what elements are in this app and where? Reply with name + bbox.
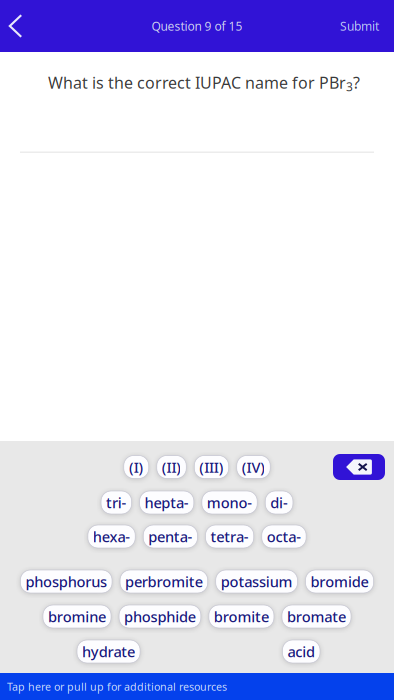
staticText: hexa- bbox=[93, 527, 130, 546]
staticText: (III) bbox=[199, 457, 224, 477]
button[interactable]: tri- bbox=[101, 491, 132, 514]
staticText: bromite bbox=[214, 607, 269, 626]
staticText: (IV) bbox=[242, 457, 265, 477]
staticText: octa- bbox=[267, 527, 301, 546]
button[interactable]: (II) bbox=[157, 455, 186, 478]
staticText: hepta- bbox=[145, 493, 189, 512]
staticText: di- bbox=[270, 493, 288, 512]
staticText: mono- bbox=[207, 493, 252, 512]
staticText: potassium bbox=[221, 572, 292, 591]
staticText: bromine bbox=[48, 607, 106, 626]
staticText: Question 9 of 15 bbox=[151, 18, 242, 34]
button[interactable]: potassium bbox=[216, 570, 297, 593]
button[interactable]: tetra- bbox=[205, 525, 254, 548]
staticText: bromate bbox=[287, 607, 346, 626]
staticText: Submit bbox=[340, 18, 379, 34]
button[interactable]: hydrate bbox=[77, 640, 140, 663]
button[interactable]: Back bbox=[0, 0, 43, 52]
staticText: hydrate bbox=[82, 642, 135, 661]
button[interactable]: octa- bbox=[262, 525, 306, 548]
button[interactable]: Submit bbox=[322, 0, 394, 52]
button[interactable]: bromite bbox=[209, 605, 274, 628]
button[interactable]: mono- bbox=[202, 491, 257, 514]
button[interactable]: perbromite bbox=[120, 570, 208, 593]
staticText: penta- bbox=[148, 527, 192, 546]
button[interactable]: di- bbox=[265, 491, 293, 514]
staticText: What is the correct IUPAC name for PBr3? bbox=[48, 72, 360, 95]
button[interactable]: Delete bbox=[333, 454, 385, 480]
staticText: tetra- bbox=[210, 527, 249, 546]
button[interactable]: bromate bbox=[282, 605, 351, 628]
button[interactable]: hexa- bbox=[88, 525, 135, 548]
staticText: Tap here or pull up for additional resou… bbox=[7, 679, 227, 694]
staticText: (II) bbox=[162, 457, 181, 477]
staticText: bromide bbox=[310, 572, 369, 591]
button[interactable]: (I) bbox=[124, 455, 149, 478]
staticText: (I) bbox=[129, 457, 144, 477]
button[interactable]: Tap here or pull up for additional resou… bbox=[0, 673, 394, 700]
staticText: phosphorus bbox=[25, 572, 107, 591]
button[interactable]: (III) bbox=[194, 455, 229, 478]
button[interactable]: (IV) bbox=[237, 455, 270, 478]
button[interactable]: hepta- bbox=[140, 491, 194, 514]
button[interactable]: bromide bbox=[305, 570, 374, 593]
button[interactable]: penta- bbox=[143, 525, 197, 548]
staticText: phosphide bbox=[124, 607, 196, 626]
button[interactable]: acid bbox=[282, 640, 320, 663]
staticText: tri- bbox=[106, 493, 127, 512]
button[interactable]: phosphide bbox=[119, 605, 201, 628]
button[interactable]: bromine bbox=[43, 605, 111, 628]
staticText: perbromite bbox=[125, 572, 203, 591]
button[interactable]: phosphorus bbox=[20, 570, 112, 593]
staticText: acid bbox=[287, 642, 315, 661]
